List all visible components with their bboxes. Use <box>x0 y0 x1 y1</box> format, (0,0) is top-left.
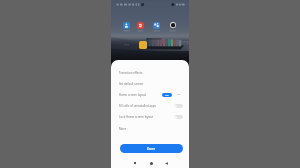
button[interactable]: Done <box>120 144 183 153</box>
staticText: More <box>119 127 127 131</box>
staticText: Transition effects <box>119 71 143 75</box>
other: Toggle <box>174 104 183 108</box>
button[interactable]: More <box>111 123 189 134</box>
staticText: 5x5 <box>177 93 181 96</box>
staticText: 4x5 <box>165 94 169 97</box>
button[interactable]: Folder <box>139 41 147 49</box>
button[interactable]: App <box>153 22 160 29</box>
button[interactable]: Back <box>161 158 171 168</box>
button[interactable]: App <box>137 22 144 29</box>
button[interactable]: Home screen layout <box>111 89 189 100</box>
button[interactable]: Fill cells of uninstalled apps <box>111 100 189 111</box>
button[interactable]: 4x5 <box>162 93 172 97</box>
staticText: Done <box>147 147 156 151</box>
button[interactable]: App <box>123 22 130 29</box>
button[interactable]: Lock Home screen layout <box>111 111 189 122</box>
button[interactable]: Set default screen <box>111 78 189 89</box>
staticText: Lock Home screen layout <box>119 115 154 119</box>
button[interactable]: Camera <box>170 22 176 28</box>
button[interactable]: Transition effects <box>111 67 189 78</box>
button[interactable]: 5x5 <box>177 93 181 96</box>
staticText: Home screen layout <box>119 93 147 97</box>
button[interactable]: Recents <box>130 158 140 168</box>
other: Toggle <box>174 115 183 119</box>
staticText: Fill cells of uninstalled apps <box>119 104 156 108</box>
staticText: Set default screen <box>119 82 144 86</box>
button[interactable]: Home <box>146 158 156 168</box>
